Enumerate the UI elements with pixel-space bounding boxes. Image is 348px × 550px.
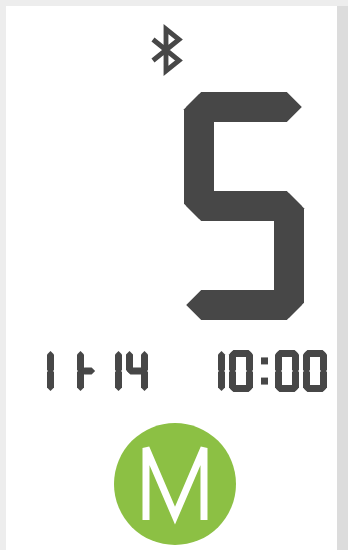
button[interactable]: Glucose meter display [0, 0, 348, 550]
